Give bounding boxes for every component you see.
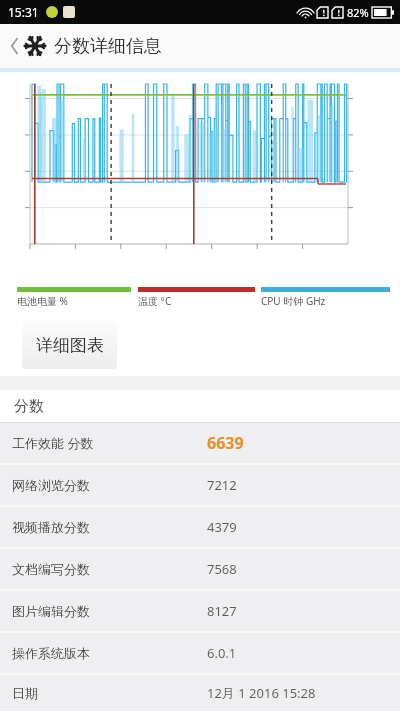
staticText: 82%: [347, 5, 369, 20]
staticText: 7212: [207, 476, 237, 494]
staticText: 文档编写分数: [12, 561, 90, 577]
staticText: 7568: [207, 560, 237, 578]
button[interactable]: 工作效能 分数: [0, 423, 400, 463]
staticText: CPU 时钟 GHz: [261, 294, 326, 308]
button[interactable]: 操作系统版本: [0, 633, 400, 673]
staticText: 6.0.1: [207, 644, 237, 662]
staticText: 详细图表: [36, 335, 104, 356]
staticText: 4379: [207, 518, 237, 536]
button[interactable]: Back: [0, 24, 400, 68]
staticText: 视频播放分数: [12, 519, 90, 535]
staticText: 工作效能 分数: [12, 434, 94, 452]
button[interactable]: 图片编辑分数: [0, 591, 400, 631]
staticText: 分数: [14, 397, 44, 416]
button[interactable]: 详细图表: [22, 321, 117, 369]
staticText: 日期: [12, 685, 38, 701]
button[interactable]: 日期: [0, 675, 400, 711]
staticText: 图片编辑分数: [12, 603, 90, 619]
button[interactable]: 网络浏览分数: [0, 465, 400, 505]
staticText: 电池电量 %: [17, 294, 68, 308]
staticText: 分数详细信息: [54, 35, 162, 58]
staticText: 8127: [207, 602, 237, 620]
button[interactable]: 文档编写分数: [0, 549, 400, 589]
staticText: 操作系统版本: [12, 645, 90, 661]
staticText: 15:31: [8, 4, 39, 20]
staticText: 网络浏览分数: [12, 477, 90, 493]
staticText: 12月 1 2016 15:28: [207, 684, 316, 702]
button[interactable]: 视频播放分数: [0, 507, 400, 547]
staticText: 温度 °C: [138, 294, 172, 308]
staticText: 6639: [207, 432, 244, 454]
